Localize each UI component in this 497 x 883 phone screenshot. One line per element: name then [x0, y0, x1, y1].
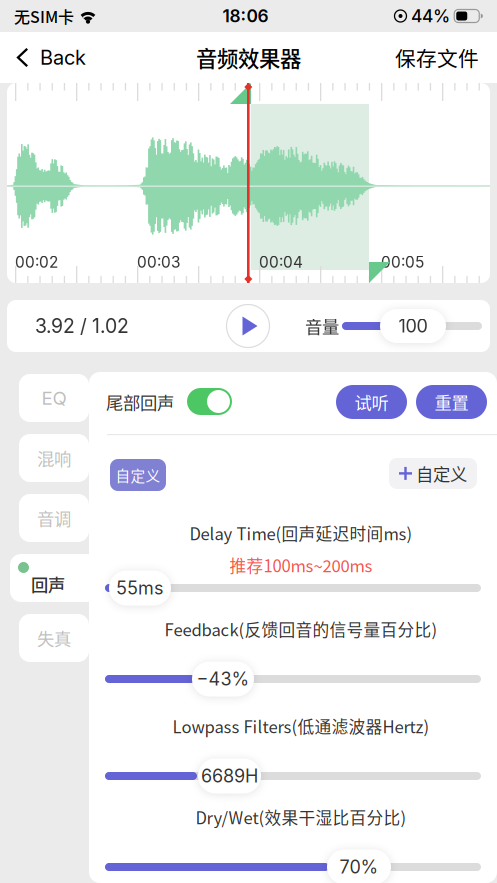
staticText: 3.92 / 1.02 [35, 314, 129, 338]
button[interactable]: 保存文件 [383, 32, 497, 83]
staticText: Back [40, 45, 86, 70]
staticText: 6689H [201, 765, 258, 787]
staticText: Dry/Wet(效果干湿比百分比) [195, 805, 406, 829]
staticText: 18:06 [222, 5, 268, 26]
staticText: −43% [196, 668, 249, 690]
staticText: 推荐100ms~200ms [229, 553, 372, 577]
staticText: Feedback(反馈回音的信号量百分比) [164, 617, 437, 641]
button[interactable]: 音调 [19, 494, 89, 542]
staticText: 00:04 [259, 253, 303, 272]
staticText: 44% [411, 5, 450, 26]
staticText: 70% [339, 856, 378, 878]
staticText: Delay Time(回声延迟时间ms) [189, 521, 412, 545]
button[interactable]: 回声 [10, 554, 98, 602]
staticText: 尾部回声 [106, 389, 174, 415]
staticText: 无SIM卡 [14, 4, 74, 28]
staticText: 100 [398, 315, 427, 337]
staticText: EQ [41, 387, 66, 409]
staticText: 自定义 [115, 464, 160, 486]
staticText: 重置 [434, 389, 468, 415]
staticText: 失真 [37, 625, 71, 651]
staticText: 自定义 [416, 461, 467, 486]
button[interactable]: 试听 [336, 385, 407, 419]
staticText: 回声 [31, 571, 65, 597]
staticText: 55ms [116, 577, 164, 599]
staticText: 试听 [354, 389, 388, 415]
button[interactable]: 混响 [19, 434, 89, 482]
staticText: 00:02 [15, 253, 58, 272]
button[interactable]: Play [223, 300, 273, 352]
staticText: 保存文件 [395, 42, 479, 72]
button[interactable]: EQ [19, 374, 89, 422]
button[interactable]: Back [0, 32, 98, 83]
staticText: 00:03 [137, 253, 180, 272]
staticText: 00:05 [381, 253, 424, 272]
button[interactable]: 自定义 [389, 458, 477, 489]
button[interactable]: Tail echo [187, 388, 232, 415]
staticText: 音量 [305, 313, 339, 339]
button[interactable]: 重置 [416, 385, 487, 419]
staticText: 音调 [37, 505, 71, 531]
button[interactable]: 自定义 [110, 459, 166, 491]
staticText: Lowpass Filters(低通滤波器Hertz) [172, 714, 429, 738]
staticText: 混响 [37, 445, 71, 471]
button[interactable]: 失真 [19, 614, 89, 662]
staticText: 音频效果器 [196, 42, 301, 73]
